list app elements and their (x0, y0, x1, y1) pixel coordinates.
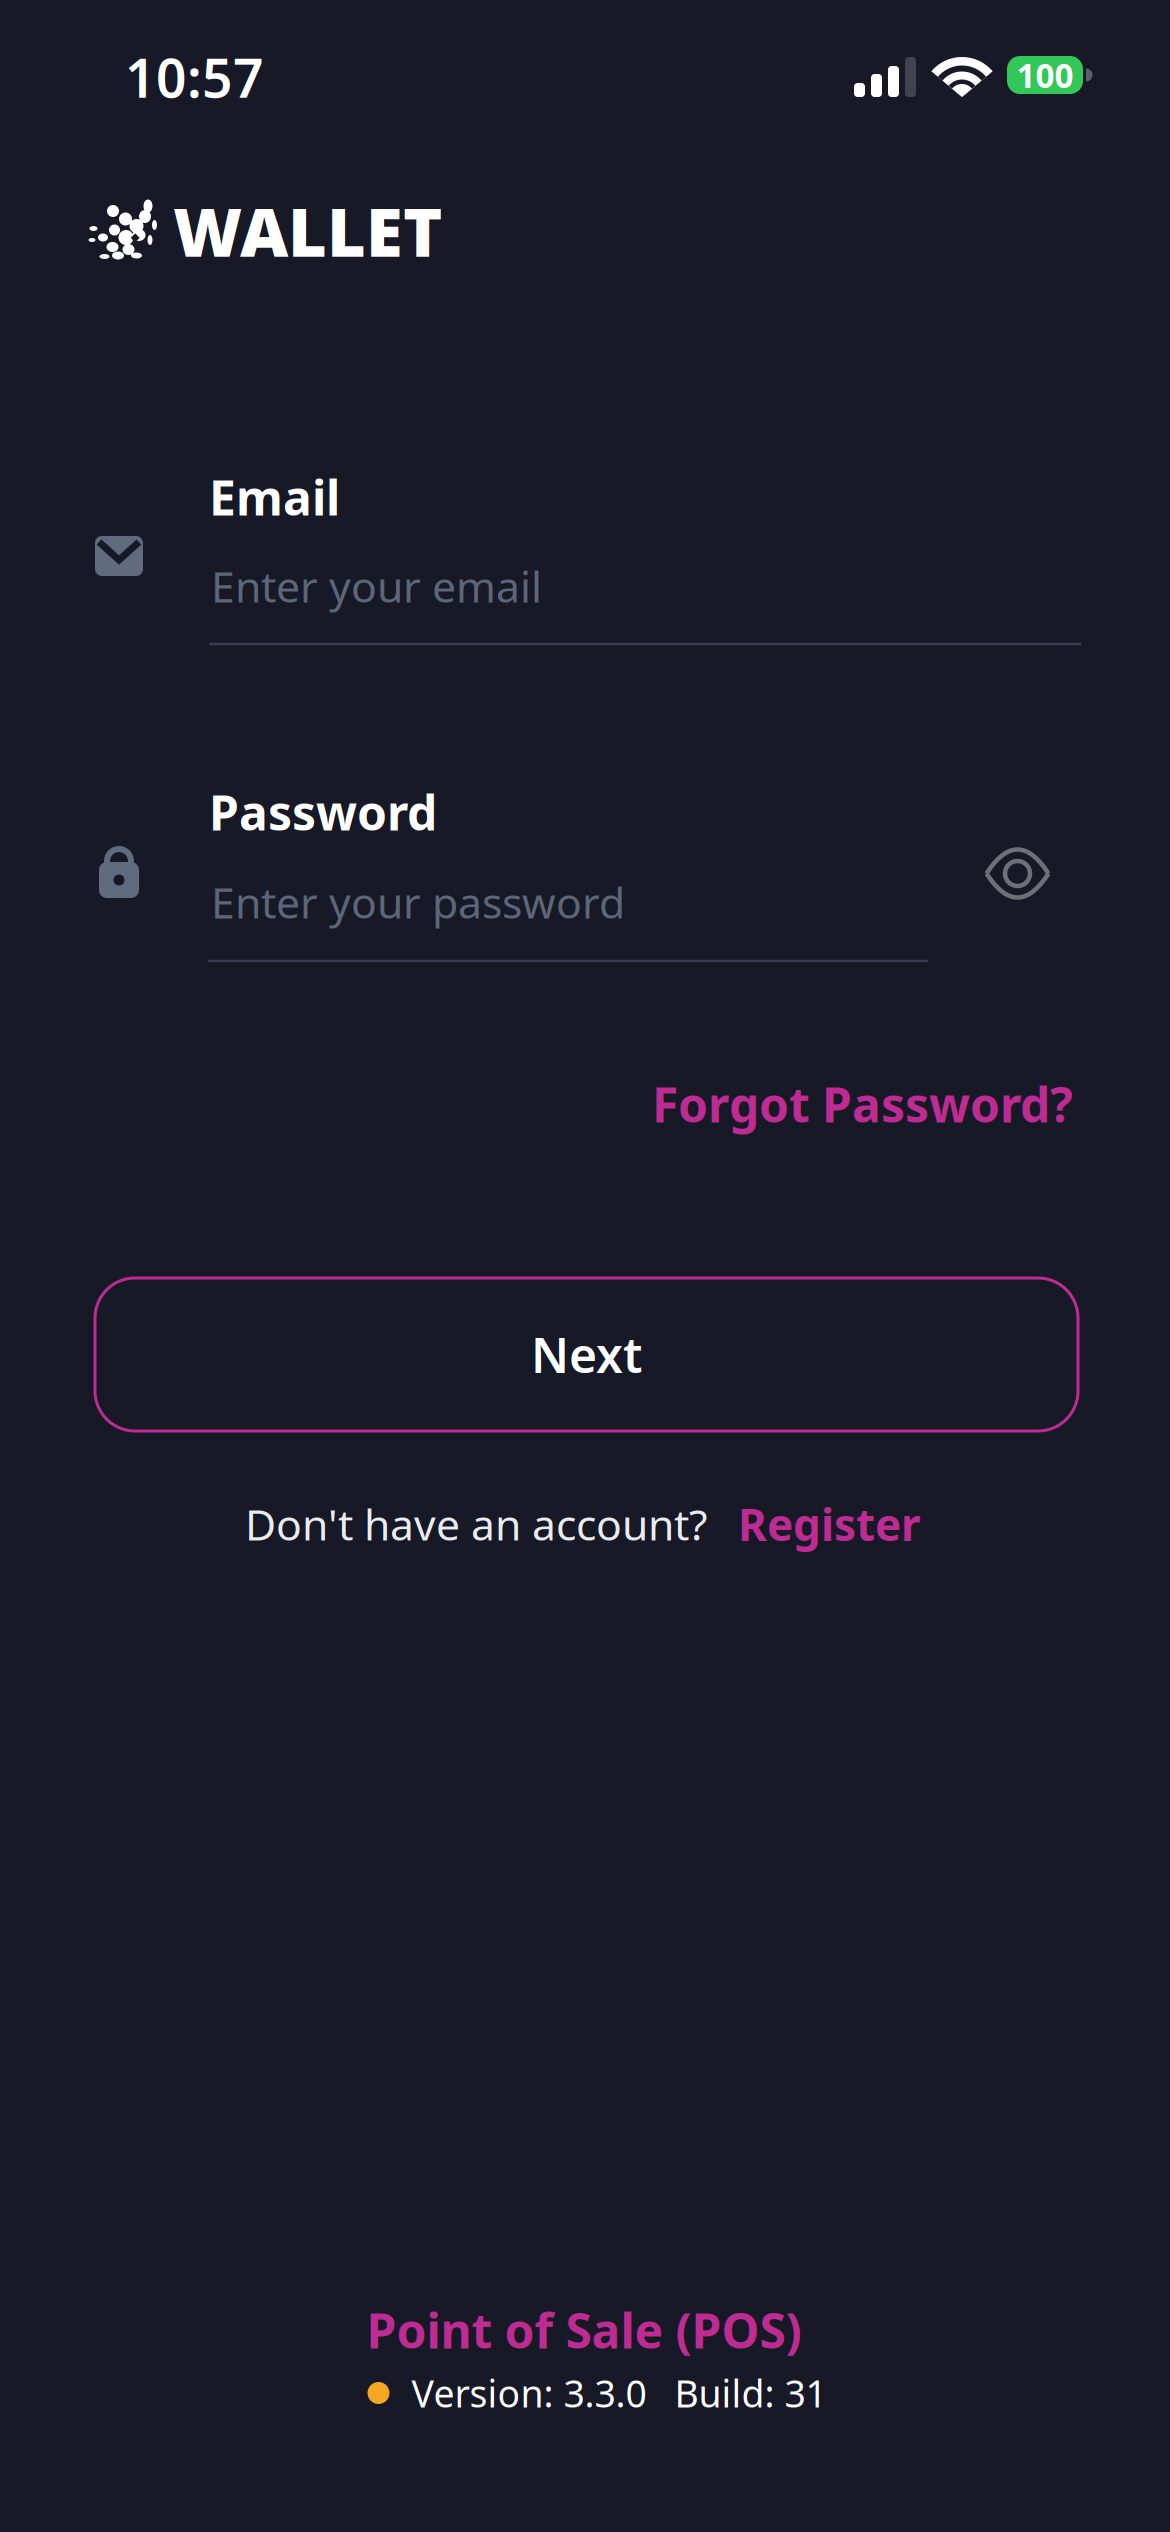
staticText: Version: 3.3.0 (411, 2368, 646, 2418)
staticText: Password (209, 780, 437, 844)
staticText: Email (209, 465, 340, 529)
button[interactable]: Register (738, 1495, 921, 1553)
button[interactable]: Forgot Password? (652, 1072, 1073, 1136)
staticText: Enter your password (211, 874, 625, 930)
staticText: 10:57 (125, 42, 264, 112)
button[interactable]: Show password (972, 838, 1062, 908)
staticText: Next (531, 1323, 642, 1386)
staticText: Register (738, 1495, 921, 1553)
staticText: 100 (1016, 53, 1073, 97)
staticText: Enter your email (211, 558, 542, 614)
staticText: Forgot Password? (652, 1072, 1073, 1136)
staticText: Point of Sale (POS) (366, 2298, 801, 2362)
staticText: Don't have an account? (245, 1496, 708, 1552)
staticText: Build: 31 (674, 2368, 826, 2418)
button[interactable]: Next (95, 1278, 1078, 1431)
staticText: WALLET (173, 187, 442, 275)
